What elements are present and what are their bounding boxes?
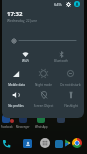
button[interactable]: Wi-Fi bbox=[7, 51, 43, 63]
staticText: WhatsApp bbox=[35, 125, 48, 129]
button[interactable]: All apps bbox=[40, 138, 50, 148]
staticText: Mobile data bbox=[8, 83, 25, 87]
staticText: Facebook bbox=[1, 125, 13, 129]
staticText: Flashlight bbox=[64, 104, 78, 108]
button[interactable]: Play Store bbox=[64, 139, 72, 147]
staticText: 17:32 bbox=[7, 10, 23, 18]
staticText: Wi-Fi bbox=[22, 59, 29, 63]
button[interactable]: No profiles bbox=[2, 91, 30, 108]
staticText: Night mode bbox=[35, 83, 52, 87]
button[interactable]: Bluetooth bbox=[43, 51, 79, 63]
button[interactable]: Brightness bbox=[10, 37, 17, 44]
staticText: Wednesday, 22 June bbox=[7, 19, 37, 23]
button[interactable]: Contacts bbox=[23, 139, 32, 148]
staticText: Bluetooth bbox=[54, 59, 68, 63]
button[interactable]: Messenger bbox=[19, 115, 27, 123]
button[interactable]: Do not disturb bbox=[57, 70, 84, 87]
button[interactable]: Screen Object Sync bbox=[30, 91, 57, 108]
button[interactable]: Chrome bbox=[72, 138, 82, 148]
button[interactable]: WhatsApp bbox=[37, 115, 45, 123]
button[interactable]: Phone bbox=[2, 139, 11, 148]
button[interactable]: Mobile data bbox=[2, 70, 30, 87]
button[interactable]: User account bbox=[74, 1, 80, 7]
staticText: Do not disturb bbox=[60, 83, 81, 87]
staticText: 64% bbox=[54, 2, 62, 7]
button[interactable]: Photos bbox=[57, 115, 65, 123]
button[interactable]: Facebook bbox=[2, 115, 10, 123]
staticText: Messenger bbox=[16, 125, 30, 129]
button[interactable]: Flashlight bbox=[57, 91, 84, 108]
button[interactable]: Settings bbox=[65, 1, 71, 7]
staticText: Screen Object Sync bbox=[31, 104, 56, 108]
button[interactable]: Messages bbox=[55, 140, 63, 148]
button[interactable]: Night mode bbox=[30, 70, 57, 87]
staticText: No profiles bbox=[8, 104, 24, 108]
